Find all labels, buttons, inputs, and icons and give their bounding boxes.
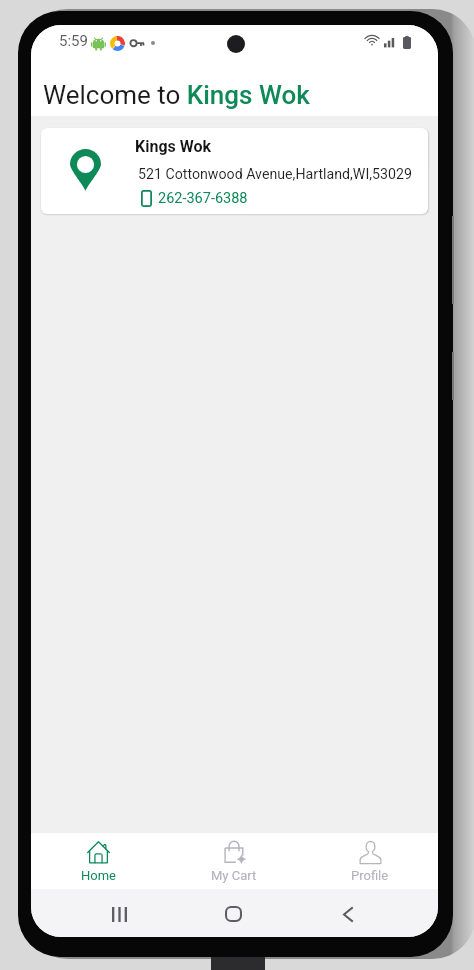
- button[interactable]: Kings Wok: [41, 128, 428, 214]
- staticText: Kings Wok: [135, 137, 212, 156]
- staticText: 5:59: [59, 32, 88, 50]
- staticText: 521 Cottonwood Avenue,Hartland,WI,53029: [138, 166, 412, 183]
- staticText: Profile: [351, 868, 389, 883]
- staticText: 262-367-6388: [158, 190, 248, 207]
- button[interactable]: Recents: [102, 899, 136, 929]
- staticText: My Cart: [211, 868, 257, 883]
- staticText: Home: [81, 868, 116, 883]
- button[interactable]: Back: [331, 899, 365, 929]
- button[interactable]: Home: [31, 833, 166, 889]
- staticText: Welcome to Kings Wok: [43, 80, 310, 110]
- button[interactable]: Profile: [302, 833, 438, 889]
- button[interactable]: Home: [216, 899, 250, 929]
- button[interactable]: My Cart: [166, 833, 302, 889]
